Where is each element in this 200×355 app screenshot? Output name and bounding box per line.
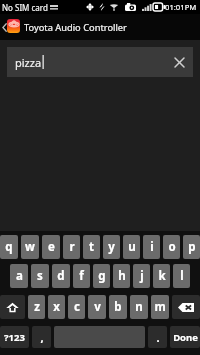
staticText: d (57, 268, 65, 284)
button[interactable]: s (31, 264, 49, 288)
button[interactable]: y (103, 235, 120, 259)
button[interactable]: Back (0, 14, 9, 40)
staticText: q (5, 239, 13, 255)
button[interactable]: g (93, 264, 110, 288)
staticText: t (89, 239, 94, 255)
staticText: a (16, 268, 23, 284)
staticText: p (188, 239, 196, 255)
button[interactable]: Done (170, 326, 200, 348)
button[interactable]: x (48, 295, 65, 319)
staticText: b (114, 299, 122, 315)
button[interactable]: Backspace (172, 295, 200, 319)
staticText: No SIM card (2, 2, 48, 13)
button[interactable]: b (109, 295, 127, 319)
button[interactable]: m (151, 295, 169, 319)
button[interactable]: k (153, 264, 170, 288)
staticText: e (48, 239, 55, 255)
staticText: u (128, 239, 136, 255)
button[interactable]: e (42, 235, 60, 259)
staticText: ?123 (4, 331, 25, 344)
staticText: s (37, 268, 43, 284)
button[interactable]: Clear query (165, 47, 193, 77)
button[interactable]: w (21, 235, 39, 259)
staticText: c (74, 299, 80, 315)
staticText: r (69, 239, 75, 255)
button[interactable]: n (130, 295, 148, 319)
staticText: Done (173, 331, 198, 344)
staticText: , (40, 330, 44, 345)
staticText: o (168, 239, 176, 255)
button[interactable]: j (133, 264, 150, 288)
button[interactable]: p (183, 235, 200, 259)
staticText: y (108, 239, 115, 255)
staticText: v (94, 299, 101, 315)
button[interactable]: a (10, 264, 28, 288)
button[interactable]: v (88, 295, 106, 319)
staticText: m (154, 299, 166, 315)
button[interactable]: q (0, 235, 18, 259)
staticText: j (140, 268, 144, 284)
button[interactable]: c (68, 295, 85, 319)
button[interactable]: f (73, 264, 90, 288)
staticText: w (25, 239, 35, 255)
staticText: f (79, 268, 84, 284)
button[interactable]: pizza (7, 47, 193, 77)
staticText: . (156, 330, 160, 345)
staticText: Toyota Audio Controller (24, 21, 127, 34)
button[interactable]: Shift (0, 295, 25, 319)
button[interactable]: , (32, 326, 51, 348)
button[interactable]: o (163, 235, 180, 259)
staticText: n (135, 299, 143, 315)
staticText: pizza (15, 55, 42, 70)
button[interactable]: t (83, 235, 100, 259)
button[interactable]: r (63, 235, 80, 259)
button[interactable]: . (148, 326, 167, 348)
button[interactable]: i (143, 235, 160, 259)
staticText: k (158, 268, 166, 284)
staticText: 01:01PM (165, 2, 197, 12)
button[interactable]: h (113, 264, 130, 288)
staticText: g (98, 268, 106, 284)
staticText: x (53, 299, 60, 315)
button[interactable]: ?123 (0, 326, 29, 348)
staticText: z (34, 299, 40, 315)
button[interactable]: z (28, 295, 45, 319)
staticText: h (118, 268, 126, 284)
button[interactable]: l (173, 264, 190, 288)
staticText: i (150, 239, 154, 255)
button[interactable]: u (123, 235, 140, 259)
staticText: l (180, 268, 184, 284)
button[interactable]: d (52, 264, 70, 288)
